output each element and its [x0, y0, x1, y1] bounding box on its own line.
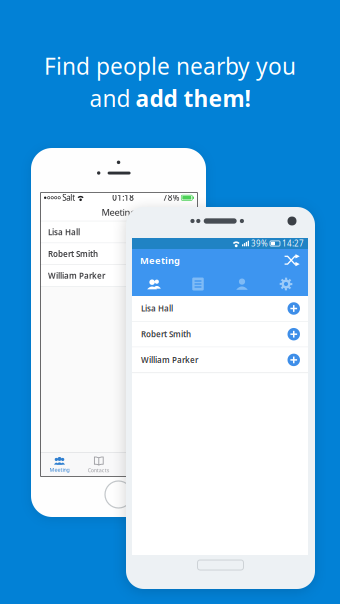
staticText: 14:27 — [282, 238, 304, 249]
staticText: William Parker — [48, 270, 105, 281]
button[interactable]: William Parker — [132, 347, 308, 372]
button[interactable]: Lisa Hall — [132, 296, 308, 321]
staticText: Meeting — [140, 254, 180, 267]
staticText: Salt — [62, 192, 75, 203]
staticText: and — [89, 83, 130, 113]
button[interactable]: Robert Smith — [132, 322, 308, 347]
button[interactable]: Meeting — [132, 272, 176, 296]
staticText: Lisa Hall — [141, 303, 173, 314]
button[interactable]: Settings — [264, 272, 308, 296]
staticText: Find people nearby you — [44, 51, 296, 81]
staticText: 01:18 — [112, 192, 134, 203]
staticText: 78% — [163, 192, 180, 203]
button[interactable]: William Parker — [40, 265, 198, 286]
staticText: 39% — [251, 238, 268, 249]
button[interactable]: Robert Smith — [40, 243, 198, 264]
staticText: Robert Smith — [141, 329, 191, 339]
button[interactable]: Shuffle — [282, 252, 301, 268]
button[interactable]: Notes — [176, 272, 220, 296]
staticText: Contacts — [88, 467, 110, 474]
staticText: Meeting — [50, 466, 70, 473]
button[interactable]: Lisa Hall — [40, 221, 198, 243]
staticText: Meeting — [101, 206, 136, 218]
staticText: Lisa Hall — [48, 227, 80, 237]
button[interactable]: Profile — [220, 272, 264, 296]
staticText: William Parker — [141, 355, 198, 365]
button[interactable]: Meeting — [40, 453, 79, 477]
button[interactable]: Contacts — [79, 453, 118, 477]
staticText: Robert Smith — [48, 248, 98, 259]
staticText: add them! — [135, 83, 250, 113]
